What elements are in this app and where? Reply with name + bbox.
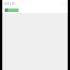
staticText: 9:41 LTE bbox=[4, 2, 15, 6]
button[interactable]: App title bbox=[4, 8, 19, 12]
